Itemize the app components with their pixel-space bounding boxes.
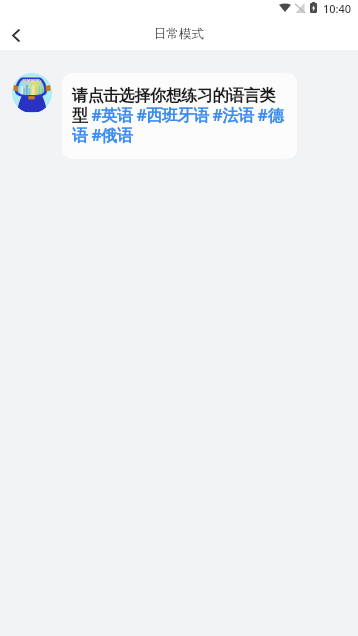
staticText: 日常模式 bbox=[154, 26, 204, 42]
staticText: 10:40 bbox=[323, 1, 352, 14]
button[interactable]: Back bbox=[5, 24, 27, 46]
button[interactable]: 请点击选择你想练习的语言类型 #英语 #西班牙语 #法语 #德语 #俄语 bbox=[62, 73, 297, 159]
staticText: 请点击选择你想练习的语言类型 #英语 #西班牙语 #法语 #德语 #俄语 bbox=[72, 86, 287, 146]
